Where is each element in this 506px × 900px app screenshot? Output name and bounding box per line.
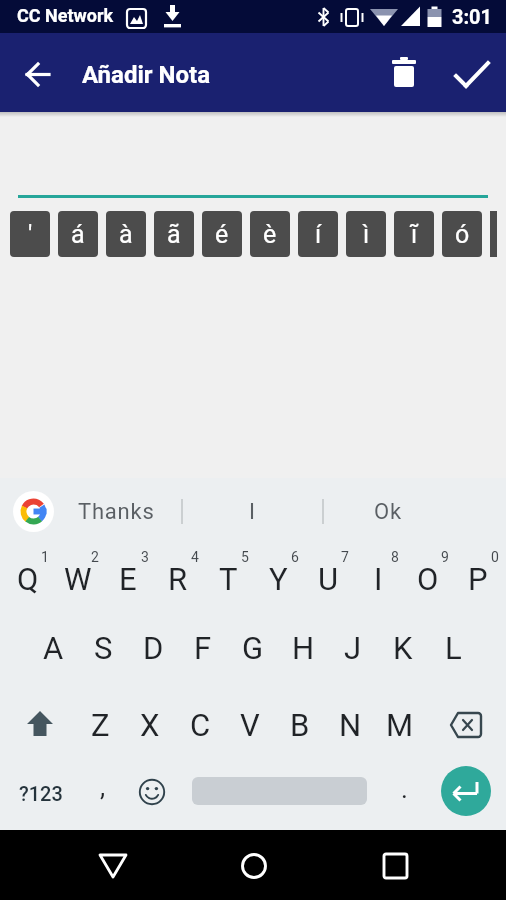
staticText: F	[194, 630, 212, 666]
button[interactable]: é	[202, 211, 242, 257]
button[interactable]	[90, 843, 136, 889]
button[interactable]: Q	[2, 545, 54, 613]
staticText: I	[249, 499, 256, 525]
staticText: '	[28, 220, 33, 249]
button[interactable]	[138, 778, 166, 806]
staticText: S	[94, 630, 113, 666]
button[interactable]: Z	[74, 691, 126, 759]
staticText: R	[168, 561, 188, 597]
staticText: Thanks	[78, 499, 155, 525]
staticText: Ok	[374, 499, 402, 525]
button[interactable]: X	[124, 691, 176, 759]
button[interactable]: M	[374, 691, 426, 759]
staticText: M	[386, 707, 414, 743]
staticText: .	[401, 774, 408, 804]
staticText: CC Network	[17, 5, 114, 26]
staticText: ó	[455, 220, 470, 249]
button[interactable]	[18, 703, 62, 747]
button[interactable]: V	[224, 691, 276, 759]
button[interactable]: í	[298, 211, 338, 257]
button[interactable]: J	[327, 614, 379, 682]
staticText: K	[393, 630, 413, 666]
button[interactable]: S	[77, 614, 129, 682]
button[interactable]: à	[106, 211, 146, 257]
staticText: T	[219, 561, 238, 597]
staticText: è	[263, 220, 277, 249]
staticText: Z	[91, 707, 110, 743]
button[interactable]: L	[427, 614, 479, 682]
button[interactable]: è	[250, 211, 290, 257]
staticText: L	[445, 630, 462, 666]
staticText: N	[339, 707, 362, 743]
button[interactable]: '	[10, 211, 50, 257]
button[interactable]: D	[127, 614, 179, 682]
staticText: 8	[391, 549, 399, 565]
staticText: 5	[241, 549, 249, 565]
button[interactable]: G	[227, 614, 279, 682]
button[interactable]: P	[452, 545, 504, 613]
staticText: H	[292, 630, 315, 666]
button[interactable]: Y	[252, 545, 304, 613]
button[interactable]: K	[377, 614, 429, 682]
button[interactable]	[13, 491, 54, 532]
staticText: 1	[41, 549, 49, 565]
staticText: ?123	[19, 782, 63, 805]
button[interactable]: á	[58, 211, 98, 257]
button[interactable]: R	[152, 545, 204, 613]
button[interactable]: ,	[89, 759, 117, 827]
staticText: 3	[141, 549, 149, 565]
button[interactable]: C	[174, 691, 226, 759]
staticText: O	[417, 561, 439, 597]
button[interactable]: .	[390, 759, 418, 827]
staticText: U	[318, 561, 339, 597]
button[interactable]: ó	[442, 211, 482, 257]
staticText: P	[468, 561, 488, 597]
staticText: D	[143, 630, 164, 666]
button[interactable]: ĩ	[394, 211, 434, 257]
staticText: B	[290, 707, 310, 743]
staticText: Q	[17, 561, 39, 597]
button[interactable]: I	[352, 545, 404, 613]
button[interactable]: N	[324, 691, 376, 759]
button[interactable]: ?123	[12, 759, 70, 827]
button[interactable]: F	[177, 614, 229, 682]
button[interactable]: H	[277, 614, 329, 682]
button[interactable]: W	[52, 545, 104, 613]
button[interactable]	[384, 53, 424, 93]
button[interactable]	[448, 53, 492, 97]
staticText: à	[119, 220, 133, 249]
button[interactable]: T	[202, 545, 254, 613]
staticText: é	[215, 220, 229, 249]
staticText: I	[374, 561, 383, 597]
button[interactable]: ì	[346, 211, 386, 257]
button[interactable]	[18, 54, 58, 94]
button[interactable]: U	[302, 545, 354, 613]
staticText: 6	[291, 549, 299, 565]
staticText: á	[71, 220, 85, 249]
staticText: 9	[441, 549, 449, 565]
staticText: X	[140, 707, 160, 743]
staticText: V	[240, 707, 260, 743]
staticText: Y	[269, 561, 288, 597]
staticText: ,	[100, 772, 106, 802]
staticText: 2	[91, 549, 99, 565]
button[interactable]: Thanks	[62, 478, 170, 545]
staticText: ĩ	[411, 220, 418, 249]
staticText: E	[119, 561, 137, 597]
button[interactable]	[230, 843, 276, 889]
staticText: 7	[341, 549, 349, 565]
button[interactable]: O	[402, 545, 454, 613]
button[interactable]: A	[27, 614, 79, 682]
button[interactable]	[441, 691, 491, 759]
button[interactable]: Ok	[329, 478, 447, 545]
staticText: A	[43, 630, 64, 666]
button[interactable]	[372, 843, 418, 889]
button[interactable]: I	[193, 478, 311, 545]
staticText: 3:01	[452, 5, 493, 28]
button[interactable]	[441, 766, 491, 816]
button[interactable]: B	[274, 691, 326, 759]
button[interactable]: E	[102, 545, 154, 613]
button[interactable]: ã	[154, 211, 194, 257]
staticText: ì	[363, 220, 370, 249]
